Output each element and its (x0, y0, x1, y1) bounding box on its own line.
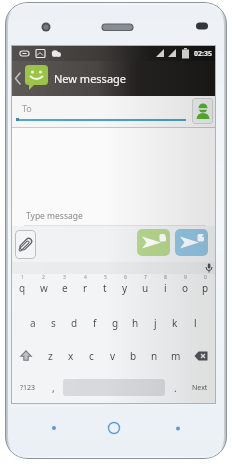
button[interactable] (63, 379, 165, 396)
button[interactable]: c (81, 339, 102, 372)
button[interactable]: f (85, 307, 105, 339)
button[interactable]: z (40, 339, 60, 372)
button[interactable] (12, 339, 40, 372)
staticText: 5 (104, 274, 107, 281)
staticText: x (68, 349, 74, 363)
button[interactable]: l (185, 307, 205, 339)
staticText: 0 (204, 274, 207, 281)
button[interactable]: g (105, 307, 125, 339)
staticText: c (89, 349, 94, 363)
button[interactable] (15, 230, 36, 259)
staticText: 7 (144, 274, 147, 281)
staticText: n (151, 349, 158, 363)
staticText: b (130, 349, 137, 363)
button[interactable]: 0 (195, 274, 215, 307)
staticText: 4 (84, 274, 87, 281)
button[interactable]: 3 (54, 274, 75, 307)
staticText: y (122, 281, 128, 295)
button[interactable]: 2 (175, 229, 208, 256)
staticText: 1 (164, 231, 168, 239)
staticText: q (19, 281, 26, 295)
staticText: New message (54, 71, 127, 86)
button[interactable]: b (123, 339, 144, 372)
button[interactable]: 9 (175, 274, 195, 307)
staticText: z (48, 349, 53, 363)
staticText: w (40, 281, 48, 295)
button[interactable]: 5 (95, 274, 115, 307)
staticText: e (62, 281, 68, 295)
button[interactable]: j (145, 307, 165, 339)
button[interactable]: x (60, 339, 81, 372)
staticText: Next (192, 383, 208, 393)
button[interactable]: ?123 (12, 372, 43, 403)
button[interactable] (186, 339, 215, 372)
staticText: r (83, 281, 88, 295)
button[interactable]: k (165, 307, 185, 339)
button[interactable]: , (43, 372, 63, 403)
button[interactable]: 4 (75, 274, 95, 307)
staticText: g (112, 316, 119, 330)
staticText: , (52, 381, 55, 395)
staticText: p (202, 281, 209, 295)
staticText: Type message (26, 210, 83, 222)
staticText: o (182, 281, 189, 295)
button[interactable]: 6 (115, 274, 135, 307)
button[interactable]: . (165, 372, 185, 403)
staticText: 6 (124, 274, 127, 281)
staticText: To (22, 102, 32, 114)
staticText: 8 (164, 274, 167, 281)
staticText: 02:35 (194, 49, 212, 59)
staticText: h (132, 316, 139, 330)
staticText: s (51, 316, 56, 330)
staticText: v (110, 349, 116, 363)
button[interactable]: n (144, 339, 165, 372)
button[interactable]: 8 (155, 274, 175, 307)
button[interactable]: 2 (33, 274, 54, 307)
staticText: 2 (42, 274, 45, 281)
staticText: 9 (184, 274, 187, 281)
staticText: l (194, 316, 197, 330)
button[interactable]: d (64, 307, 85, 339)
button[interactable]: 7 (135, 274, 155, 307)
button[interactable]: New message (12, 61, 215, 96)
staticText: t (103, 281, 107, 295)
staticText: k (172, 316, 178, 330)
button[interactable]: Next (185, 372, 215, 403)
staticText: u (142, 281, 149, 295)
button[interactable]: m (165, 339, 186, 372)
button[interactable]: 1 (137, 229, 170, 256)
staticText: f (93, 316, 97, 330)
button[interactable]: s (43, 307, 64, 339)
button[interactable]: 1 (12, 274, 33, 307)
staticText: j (154, 316, 157, 330)
staticText: 1 (21, 274, 24, 281)
staticText: d (71, 316, 78, 330)
button[interactable]: h (125, 307, 145, 339)
button[interactable]: a (22, 307, 43, 339)
staticText: . (174, 381, 177, 395)
staticText: 2 (202, 231, 206, 239)
staticText: i (164, 281, 167, 295)
staticText: 3 (63, 274, 66, 281)
staticText: ?123 (20, 383, 36, 393)
staticText: a (30, 316, 36, 330)
staticText: m (171, 349, 181, 363)
button[interactable] (192, 98, 213, 124)
button[interactable]: v (102, 339, 123, 372)
